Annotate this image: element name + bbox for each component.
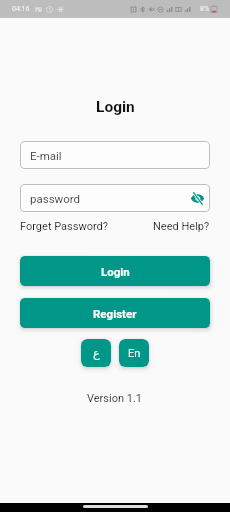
- button[interactable]: password: [20, 184, 210, 212]
- staticText: 04:16: [12, 5, 30, 13]
- staticText: password: [30, 192, 81, 205]
- staticText: Register: [93, 307, 137, 320]
- button[interactable]: Forget Password?: [20, 220, 108, 233]
- staticText: Login: [101, 265, 130, 278]
- staticText: Login: [96, 98, 135, 116]
- button[interactable]: Login: [20, 256, 210, 286]
- button[interactable]: En: [119, 339, 149, 367]
- button[interactable]: ع: [81, 339, 111, 367]
- staticText: E-mail: [30, 149, 62, 162]
- button[interactable]: E-mail: [20, 141, 210, 169]
- staticText: 8%: [200, 5, 210, 13]
- button[interactable]: Need Help?: [153, 220, 210, 233]
- button[interactable]: Register: [20, 298, 210, 328]
- button[interactable]: Toggle password visibility: [189, 190, 205, 206]
- staticText: En: [128, 347, 141, 360]
- staticText: Version 1.1: [87, 392, 143, 405]
- staticText: ع: [93, 347, 100, 360]
